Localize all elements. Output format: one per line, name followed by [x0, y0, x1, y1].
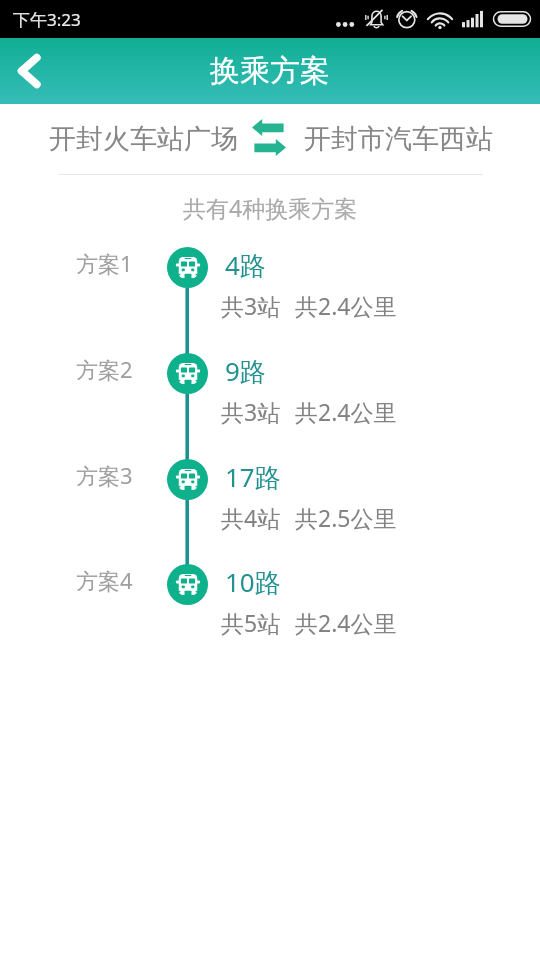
staticText: 开封火车站广场	[49, 122, 238, 156]
staticText: 共5站	[221, 607, 281, 638]
staticText: 10路	[225, 564, 281, 600]
staticText: 共3站	[221, 396, 281, 427]
staticText: 17路	[225, 459, 281, 495]
staticText: 方案3	[76, 460, 133, 490]
staticText: 4路	[225, 247, 266, 283]
staticText: 方案2	[76, 354, 133, 384]
staticText: 方案1	[76, 248, 133, 278]
button[interactable]: 方案1	[0, 214, 540, 320]
staticText: 共2.4公里	[295, 396, 397, 427]
button[interactable]: 方案4	[0, 531, 540, 637]
staticText: 共2.4公里	[295, 290, 397, 321]
staticText: 共有4种换乘方案	[183, 192, 358, 223]
staticText: 共3站	[221, 290, 281, 321]
staticText: 开封市汽车西站	[304, 122, 493, 156]
staticText: 方案4	[76, 565, 133, 595]
staticText: 共2.4公里	[295, 607, 397, 638]
staticText: 下午3:23	[13, 8, 81, 31]
staticText: 共4站	[221, 502, 281, 533]
button[interactable]: 方案3	[0, 426, 540, 532]
button[interactable]: Back	[0, 38, 57, 104]
button[interactable]: 方案2	[0, 320, 540, 426]
staticText: 共2.5公里	[295, 502, 397, 533]
staticText: 9路	[225, 353, 266, 389]
staticText: 换乘方案	[210, 52, 330, 90]
